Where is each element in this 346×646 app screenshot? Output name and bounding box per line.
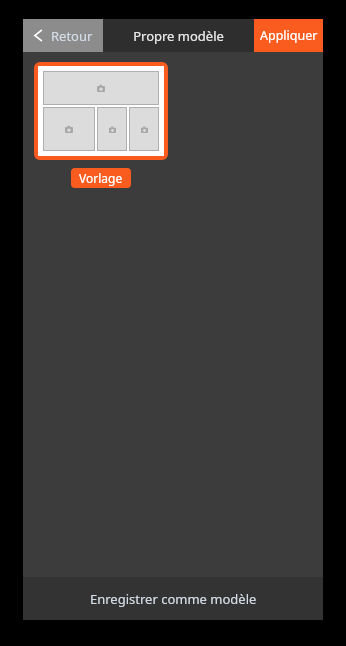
button[interactable]: Appliquer xyxy=(254,19,323,52)
staticText: Retour xyxy=(51,27,93,45)
staticText: Vorlage xyxy=(79,170,123,186)
button[interactable]: Retour xyxy=(23,19,103,52)
staticText: Propre modèle xyxy=(133,27,224,45)
button[interactable] xyxy=(34,62,168,160)
staticText: Enregistrer comme modèle xyxy=(90,590,257,608)
button[interactable]: Vorlage xyxy=(71,168,131,188)
button[interactable]: Enregistrer comme modèle xyxy=(23,577,323,620)
staticText: Appliquer xyxy=(260,27,318,44)
